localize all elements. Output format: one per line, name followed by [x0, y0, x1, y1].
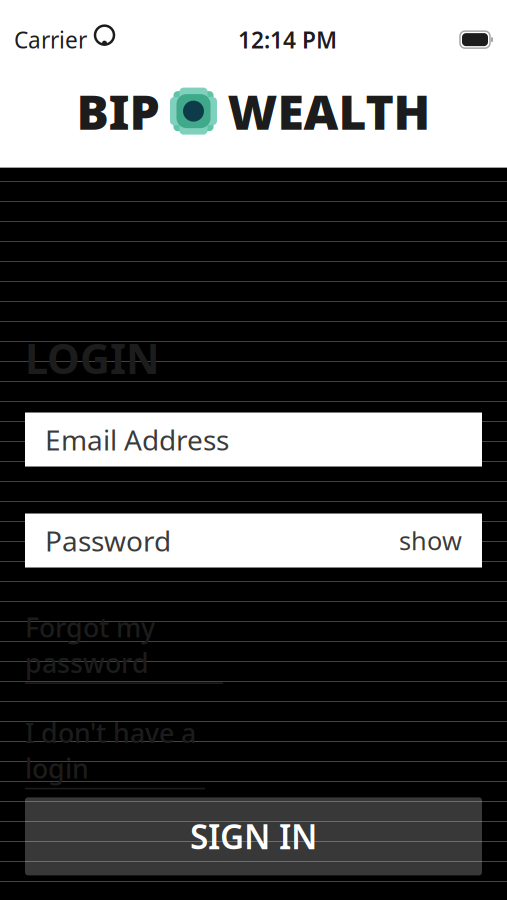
staticText: Email Address	[45, 421, 229, 458]
button[interactable]: I don't have a login	[25, 715, 205, 789]
staticText: LOGIN	[25, 331, 160, 385]
button[interactable]: SIGN IN	[25, 797, 482, 875]
staticText: Password	[45, 522, 171, 559]
staticText: Carrier	[14, 25, 87, 55]
staticText: Forgot my password	[25, 609, 155, 680]
staticText: 12:14 PM	[238, 25, 337, 55]
staticText: WEALTH	[227, 79, 430, 143]
button[interactable]: Password	[25, 513, 482, 567]
button[interactable]: Email Address	[25, 412, 482, 466]
staticText: show	[399, 524, 462, 557]
button[interactable]: Forgot my password	[25, 609, 223, 684]
staticText: I don't have a login	[25, 715, 196, 786]
staticText: SIGN IN	[190, 814, 317, 858]
staticText: BIP	[76, 79, 159, 143]
